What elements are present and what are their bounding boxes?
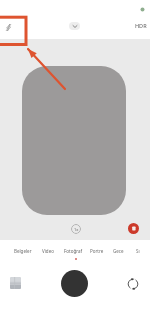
button[interactable]: Sı xyxy=(136,248,140,254)
button[interactable]: Take photo xyxy=(61,270,88,297)
staticText: Video xyxy=(42,248,54,254)
button[interactable]: Portre xyxy=(90,248,104,254)
staticText: Portre xyxy=(90,248,104,254)
staticText: Gece xyxy=(113,248,124,254)
staticText: HDR xyxy=(135,22,147,29)
button[interactable]: HDR xyxy=(135,22,147,29)
button[interactable]: Gece xyxy=(113,248,124,254)
button[interactable]: Switch camera xyxy=(126,277,140,291)
button[interactable]: Flash off xyxy=(3,22,14,33)
button[interactable]: Gallery xyxy=(10,277,21,289)
staticText: 1x xyxy=(74,227,79,232)
button[interactable]: Belgeler xyxy=(14,248,32,254)
button[interactable]: Show more settings xyxy=(69,22,80,30)
button[interactable]: Record video xyxy=(128,223,139,234)
button[interactable]: 1x xyxy=(71,224,81,234)
button[interactable]: Fotoğraf xyxy=(64,248,83,256)
button[interactable]: Video xyxy=(42,248,54,254)
staticText: Belgeler xyxy=(14,248,32,254)
staticText: Fotoğraf xyxy=(64,248,83,254)
staticText: Sı xyxy=(136,248,140,254)
